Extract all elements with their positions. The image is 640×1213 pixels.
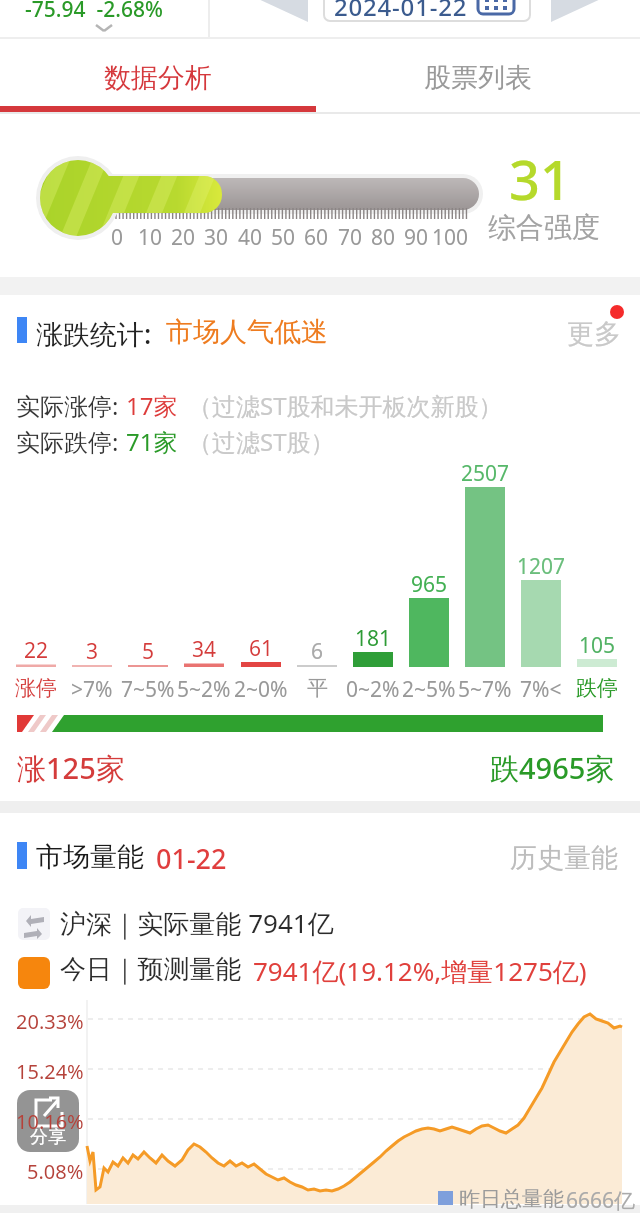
staticText: 01-22	[156, 840, 227, 877]
staticText: 今日｜预测量能	[60, 953, 242, 986]
staticText: 沪深｜实际量能 7941亿	[60, 905, 334, 941]
staticText: 31	[509, 142, 571, 216]
staticText: 90	[404, 223, 429, 252]
button[interactable]: 股票列表	[316, 56, 640, 100]
staticText: 61	[249, 634, 274, 663]
staticText: 0~2%	[346, 675, 400, 704]
staticText: 5~7%	[458, 675, 512, 704]
staticText: 100	[432, 223, 469, 252]
staticText: （过滤ST股）	[188, 425, 335, 458]
staticText: 965	[411, 570, 448, 599]
staticText: 涨125家	[17, 748, 125, 788]
staticText: 跌停	[576, 675, 618, 701]
button[interactable]: 数据分析	[0, 56, 316, 100]
button[interactable]	[260, 0, 600, 55]
staticText: 7941亿(19.12%,增量1275亿)	[253, 953, 587, 989]
staticText: 历史量能	[510, 841, 618, 875]
staticText: 跌4965家	[490, 748, 615, 788]
staticText: 2~5%	[402, 675, 456, 704]
staticText: 10.16%	[16, 1108, 84, 1135]
staticText: 涨跌统计:	[36, 315, 152, 352]
button[interactable]: 分享	[17, 1090, 79, 1152]
staticText: 70	[338, 223, 363, 252]
staticText: >7%	[71, 675, 113, 704]
staticText: 30	[204, 223, 229, 252]
staticText: 市场人气低迷	[166, 315, 328, 349]
staticText: 6666亿	[566, 1186, 636, 1213]
staticText: 1207	[517, 552, 566, 581]
staticText: 5.08%	[27, 1158, 84, 1185]
button[interactable]: 历史量能	[500, 841, 618, 875]
staticText: 7~5%	[121, 675, 175, 704]
staticText: 实际涨停:	[16, 389, 119, 422]
staticText: 昨日总量能	[459, 1186, 564, 1212]
staticText: 2024-01-22	[334, 0, 468, 23]
staticText: 17家	[126, 389, 178, 422]
staticText: 7%<	[520, 675, 562, 704]
staticText: 3	[86, 637, 99, 666]
staticText: 34	[192, 635, 217, 664]
staticText: 80	[371, 223, 396, 252]
staticText: 涨停	[15, 675, 57, 701]
staticText: 60	[304, 223, 329, 252]
staticText: 5~2%	[177, 675, 231, 704]
staticText: 5	[142, 637, 155, 666]
staticText: 2507	[461, 459, 510, 488]
staticText: 71家	[126, 425, 178, 458]
staticText: 15.24%	[16, 1058, 84, 1085]
staticText: 105	[579, 631, 616, 660]
staticText: 股票列表	[424, 61, 532, 95]
button[interactable]: 更多	[567, 317, 621, 351]
staticText: 40	[238, 223, 263, 252]
staticText: 实际跌停:	[16, 425, 119, 458]
staticText: 分享	[30, 1126, 66, 1149]
staticText: 6	[311, 637, 324, 666]
staticText: 2~0%	[234, 675, 288, 704]
staticText: 20.33%	[16, 1008, 84, 1035]
staticText: 50	[271, 223, 296, 252]
staticText: （过滤ST股和未开板次新股）	[188, 389, 503, 422]
staticText: 综合强度	[488, 210, 600, 245]
staticText: 10	[138, 223, 163, 252]
staticText: 数据分析	[104, 61, 212, 95]
staticText: 平	[307, 675, 328, 701]
staticText: -75.94 -2.68%	[25, 0, 163, 24]
staticText: 20	[171, 223, 196, 252]
staticText: 市场量能	[36, 840, 144, 874]
staticText: 0	[111, 223, 124, 252]
staticText: 181	[355, 624, 392, 653]
staticText: 22	[24, 636, 49, 665]
